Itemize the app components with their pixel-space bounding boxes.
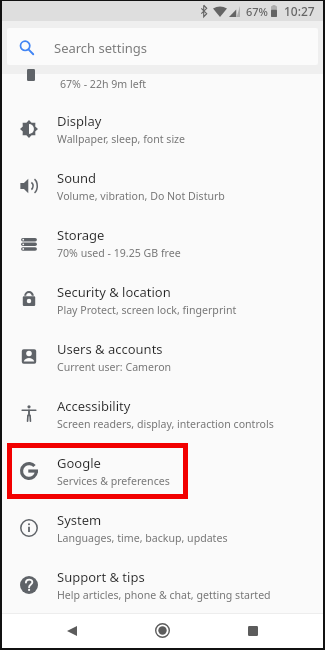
staticText: Storage: [57, 226, 105, 244]
staticText: Accessibility: [57, 397, 131, 415]
button[interactable]: System: [2, 499, 323, 556]
button[interactable]: Google: [2, 442, 323, 499]
staticText: Screen readers, display, interaction con…: [57, 417, 274, 431]
staticText: Help articles, phone & chat, getting sta…: [57, 588, 271, 602]
staticText: 10:27: [284, 3, 315, 19]
button[interactable]: Users & accounts: [2, 328, 323, 385]
staticText: 67%: [246, 4, 268, 19]
button[interactable]: Display: [2, 100, 323, 157]
staticText: Sound: [57, 169, 97, 187]
staticText: Search settings: [54, 39, 148, 57]
button[interactable]: Security & location: [2, 271, 323, 328]
staticText: Wallpaper, sleep, font size: [57, 132, 186, 146]
button[interactable]: Support & tips: [2, 556, 323, 613]
button[interactable]: Accessibility: [2, 385, 323, 442]
button[interactable]: Search settings: [7, 28, 318, 65]
staticText: Security & location: [57, 283, 171, 301]
staticText: 67% - 22h 9m left: [60, 77, 147, 91]
staticText: System: [57, 511, 102, 529]
staticText: Services & preferences: [57, 474, 170, 488]
button[interactable]: Storage: [2, 214, 323, 271]
staticText: Display: [57, 112, 102, 130]
staticText: Play Protect, screen lock, fingerprint: [57, 303, 237, 317]
button[interactable]: Home: [140, 614, 184, 648]
button[interactable]: Sound: [2, 157, 323, 214]
button[interactable]: Recent apps: [231, 614, 275, 648]
button[interactable]: 67% - 22h 9m left: [2, 74, 323, 100]
staticText: 70% used - 19.25 GB free: [57, 246, 181, 260]
staticText: Users & accounts: [57, 340, 163, 358]
staticText: Languages, time, backup, updates: [57, 531, 228, 545]
staticText: Google: [57, 454, 101, 472]
staticText: Volume, vibration, Do Not Disturb: [57, 189, 225, 203]
staticText: Current user: Cameron: [57, 360, 172, 374]
button[interactable]: Back: [50, 614, 94, 648]
staticText: Support & tips: [57, 568, 145, 586]
